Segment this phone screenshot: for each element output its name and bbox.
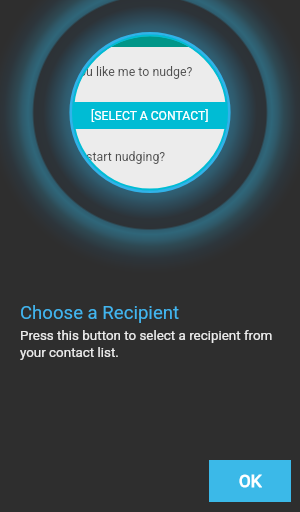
staticText: ou like me to nudge? [79,64,193,79]
staticText: Press this button to select a recipient … [20,328,273,361]
staticText: [SELECT A CONTACT] [91,109,209,123]
button[interactable]: OK [209,460,291,502]
staticText: l start nudging? [80,149,166,164]
staticText: OK [239,471,262,491]
staticText: Choose a Recipient [20,302,180,324]
